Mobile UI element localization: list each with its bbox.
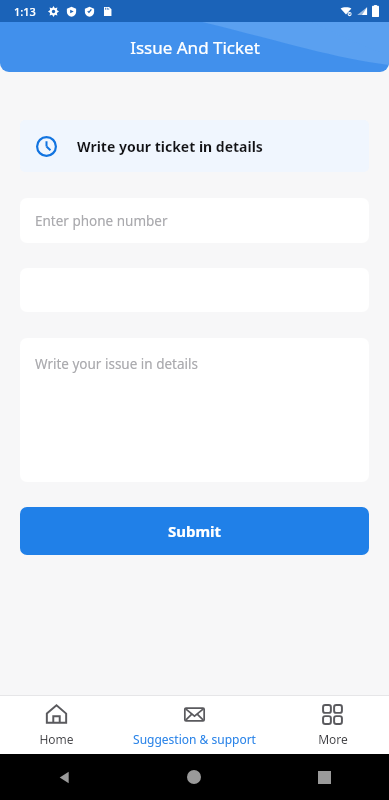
staticText: Suggestion & support: [133, 731, 256, 747]
button[interactable]: Suggestion and support: [113, 697, 276, 753]
other: Back: [57, 770, 72, 785]
staticText: Submit: [168, 521, 222, 541]
button[interactable]: Enter phone number: [20, 198, 369, 243]
button[interactable]: Write your ticket in details: [20, 120, 369, 172]
staticText: 1:13: [14, 4, 36, 19]
staticText: Write your issue in details: [35, 355, 198, 373]
staticText: Write your ticket in details: [77, 137, 263, 156]
staticText: Home: [39, 731, 74, 747]
staticText: Enter phone number: [35, 212, 168, 230]
button[interactable]: Home: [0, 697, 113, 753]
staticText: More: [318, 731, 348, 747]
button[interactable]: Write your issue in details: [20, 338, 369, 482]
staticText: Issue And Ticket: [130, 36, 260, 59]
other: Home: [187, 770, 201, 784]
button[interactable]: More: [276, 697, 389, 753]
button[interactable]: Submit: [20, 507, 369, 555]
